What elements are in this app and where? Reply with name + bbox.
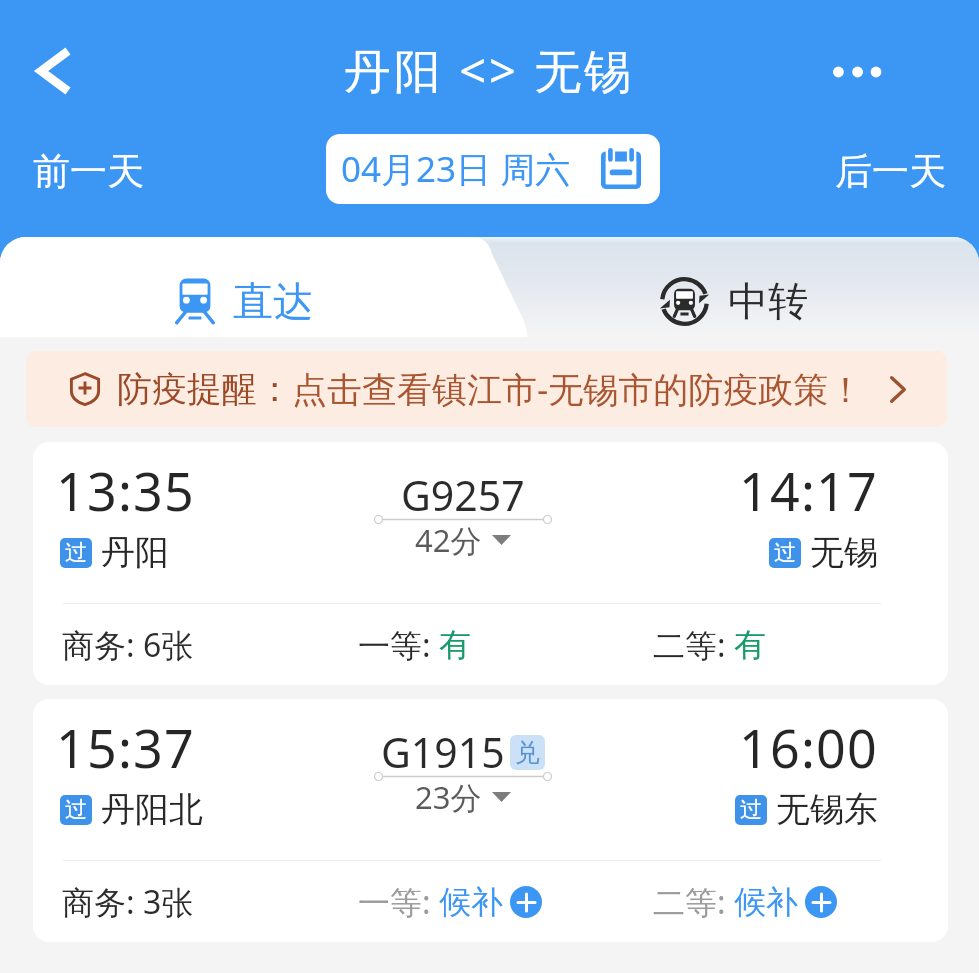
staticText: 后一天 — [835, 148, 946, 195]
button[interactable]: 15:37 — [33, 699, 948, 942]
staticText: 商务: 6张 — [62, 623, 194, 667]
staticText: 有 — [439, 625, 471, 665]
staticText: 42分 — [415, 519, 482, 561]
button[interactable]: 04月23日 周六 — [326, 134, 660, 204]
staticText: 过 — [65, 796, 87, 824]
staticText: 23分 — [415, 776, 482, 818]
staticText: 候补 — [734, 882, 798, 922]
staticText: 有 — [734, 625, 766, 665]
staticText: 13:35 — [56, 455, 195, 526]
button[interactable]: 直达 — [140, 237, 348, 337]
button[interactable]: 后一天 — [835, 148, 946, 195]
button[interactable]: Back — [28, 45, 80, 97]
staticText: 无锡东 — [776, 788, 878, 831]
button[interactable]: 前一天 — [33, 148, 144, 195]
staticText: 04月23日 周六 — [341, 145, 571, 193]
staticText: 丹阳 — [101, 531, 169, 574]
staticText: 二等: — [653, 623, 734, 667]
staticText: 兑 — [515, 737, 540, 768]
staticText: 15:37 — [56, 712, 195, 783]
staticText: 直达 — [233, 276, 313, 326]
staticText: 前一天 — [33, 148, 144, 195]
button[interactable]: 中转 — [629, 237, 837, 337]
staticText: 一等: — [358, 623, 439, 667]
button[interactable]: More options — [814, 48, 898, 96]
staticText: 无锡 — [810, 531, 878, 574]
staticText: 14:17 — [739, 455, 878, 526]
staticText: 丹阳 <> 无锡 — [344, 38, 635, 102]
staticText: 一等: — [358, 880, 439, 924]
staticText: 16:00 — [739, 712, 878, 783]
button[interactable]: 13:35 — [33, 442, 948, 685]
staticText: 商务: 3张 — [62, 880, 194, 924]
staticText: 防疫提醒： — [117, 367, 292, 411]
staticText: 过 — [65, 539, 87, 567]
staticText: 二等: — [653, 880, 734, 924]
staticText: 过 — [774, 539, 796, 567]
button[interactable]: 防疫提醒： — [26, 351, 947, 427]
staticText: 点击查看镇江市-无锡市的防疫政策！ — [292, 365, 864, 413]
staticText: 丹阳北 — [101, 788, 203, 831]
staticText: 候补 — [439, 882, 503, 922]
staticText: G9257 — [401, 467, 525, 523]
staticText: G1915 — [381, 724, 505, 780]
staticText: 中转 — [728, 276, 808, 326]
staticText: 过 — [740, 796, 762, 824]
